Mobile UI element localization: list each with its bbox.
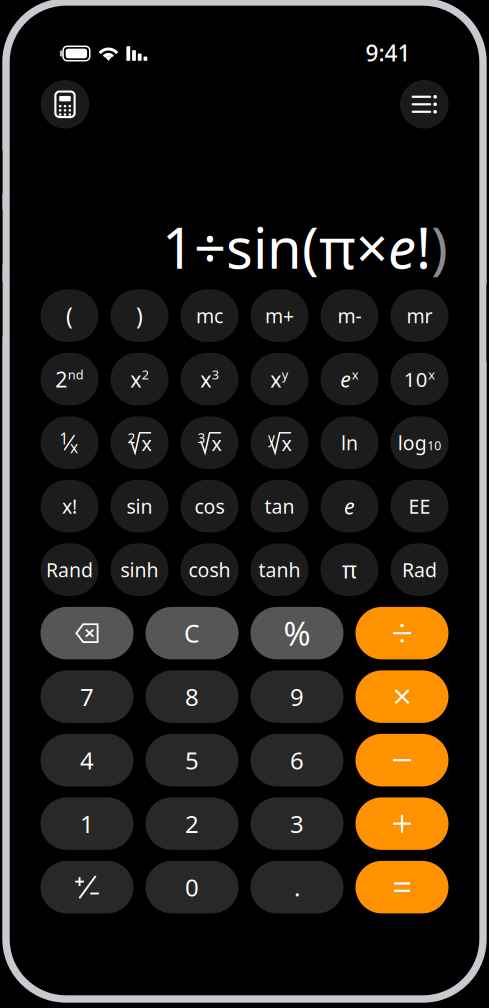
staticText: m-: [337, 302, 361, 329]
button[interactable]: Natural logarithm: [320, 416, 378, 469]
button[interactable]: 9: [250, 670, 343, 723]
button[interactable]: Clear: [145, 607, 238, 659]
staticText: cosh: [188, 556, 230, 583]
staticText: ln: [341, 429, 358, 456]
button[interactable]: Random: [40, 543, 98, 596]
staticText: 9: [290, 680, 304, 713]
staticText: 1: [60, 428, 69, 449]
staticText: 7: [80, 680, 94, 713]
staticText: 1: [80, 807, 94, 840]
button[interactable]: Log base 10: [390, 416, 448, 469]
button[interactable]: y-th root: [250, 416, 308, 469]
staticText: x: [70, 437, 78, 458]
button[interactable]: Reciprocal: [40, 416, 98, 469]
button[interactable]: Hyperbolic sine: [110, 543, 168, 596]
staticText: 3: [290, 807, 304, 840]
staticText: .: [294, 871, 300, 903]
staticText: x: [281, 430, 291, 457]
staticText: %: [283, 611, 310, 655]
staticText: 2: [185, 807, 199, 840]
staticText: 10: [427, 437, 441, 454]
button[interactable]: Percent: [250, 607, 343, 659]
staticText: !: [416, 209, 431, 285]
button[interactable]: Memory clear: [180, 289, 238, 342]
staticText: sin: [126, 493, 152, 519]
button[interactable]: Open parenthesis: [40, 289, 98, 342]
button[interactable]: 10 to the power of x: [390, 353, 448, 405]
staticText: (: [66, 300, 73, 331]
button[interactable]: x to the power of y: [250, 353, 308, 405]
staticText: x: [352, 366, 359, 383]
staticText: x: [141, 430, 151, 457]
button[interactable]: Euler's number: [320, 480, 378, 532]
staticText: π: [342, 554, 357, 585]
button[interactable]: Cosine: [180, 480, 238, 532]
staticText: nd: [68, 366, 84, 383]
staticText: x: [211, 430, 221, 457]
staticText: tan: [264, 493, 294, 519]
button[interactable]: Equals: [355, 861, 448, 913]
button[interactable]: Radians: [390, 543, 448, 596]
staticText: 8: [185, 680, 199, 713]
staticText: tanh: [258, 556, 300, 583]
button[interactable]: Change sign: [40, 861, 133, 913]
button[interactable]: Pi: [320, 543, 378, 596]
button[interactable]: Square root: [110, 416, 168, 469]
button[interactable]: Sine: [110, 480, 168, 532]
button[interactable]: Decimal point: [250, 861, 343, 913]
button[interactable]: 6: [250, 734, 343, 786]
staticText: 5: [185, 744, 199, 776]
button[interactable]: Cubed: [180, 353, 238, 405]
button[interactable]: Add: [355, 797, 448, 850]
staticText: cos: [194, 493, 224, 519]
button[interactable]: Memory subtract: [320, 289, 378, 342]
button[interactable]: Tangent: [250, 480, 308, 532]
staticText: 4: [80, 744, 94, 776]
staticText: 2: [142, 366, 149, 383]
button[interactable]: 8: [145, 670, 238, 723]
staticText: 2: [127, 429, 135, 447]
staticText: mr: [406, 302, 432, 329]
staticText: y: [268, 429, 275, 447]
staticText: 2: [55, 365, 67, 394]
button[interactable]: Hyperbolic tangent: [250, 543, 308, 596]
button[interactable]: Delete: [40, 607, 133, 659]
button[interactable]: Exponent: [390, 480, 448, 532]
staticText: e: [344, 492, 355, 521]
button[interactable]: 1: [40, 797, 133, 850]
button[interactable]: History: [400, 80, 449, 129]
button[interactable]: Factorial: [40, 480, 98, 532]
staticText: x!: [62, 493, 77, 519]
staticText: ): [431, 209, 448, 285]
button[interactable]: Memory add: [250, 289, 308, 342]
button[interactable]: 3: [250, 797, 343, 850]
button[interactable]: 5: [145, 734, 238, 786]
button[interactable]: Cube root: [180, 416, 238, 469]
staticText: log: [398, 429, 427, 456]
button[interactable]: 0: [145, 861, 238, 913]
button[interactable]: Divide: [355, 607, 448, 659]
button[interactable]: Multiply: [355, 670, 448, 723]
staticText: 3: [197, 429, 205, 447]
button[interactable]: Memory recall: [390, 289, 448, 342]
button[interactable]: 7: [40, 670, 133, 723]
button[interactable]: Hyperbolic cosine: [180, 543, 238, 596]
staticText: 3: [212, 366, 219, 383]
staticText: EE: [408, 493, 430, 519]
staticText: Rad: [402, 556, 437, 583]
button[interactable]: Second functions: [40, 353, 98, 405]
staticText: 0: [185, 871, 199, 903]
staticText: y: [282, 366, 289, 383]
button[interactable]: Squared: [110, 353, 168, 405]
button[interactable]: 4: [40, 734, 133, 786]
staticText: mc: [196, 302, 223, 329]
staticText: sinh: [120, 556, 158, 583]
staticText: ): [136, 300, 143, 331]
staticText: 9:41: [365, 37, 410, 68]
staticText: x: [270, 365, 281, 394]
button[interactable]: e to the power of x: [320, 353, 378, 405]
button[interactable]: 2: [145, 797, 238, 850]
button[interactable]: Close parenthesis: [110, 289, 168, 342]
button[interactable]: Subtract: [355, 734, 448, 786]
button[interactable]: Calculator mode: [41, 80, 89, 129]
